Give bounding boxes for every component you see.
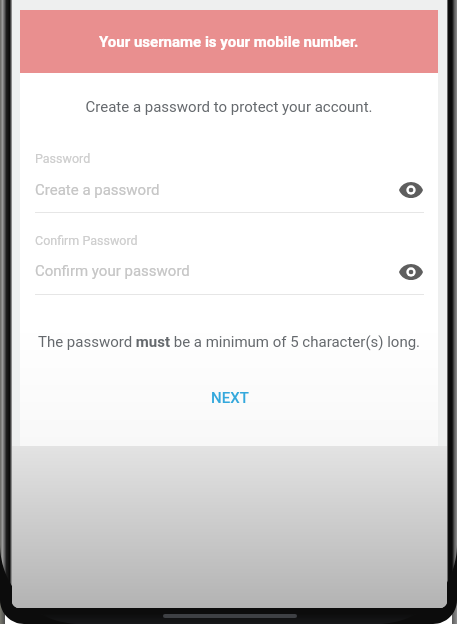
staticText: Password (35, 151, 91, 166)
button[interactable]: NEXT (197, 382, 263, 414)
staticText: Your username is your mobile number. (99, 33, 359, 51)
staticText: Confirm your password (35, 262, 190, 280)
staticText: Create a password to protect your accoun… (20, 98, 438, 116)
button[interactable]: Show password (395, 256, 427, 288)
staticText: The password must be a minimum of 5 char… (20, 333, 438, 351)
button[interactable]: Show password (395, 174, 427, 206)
staticText: Create a password (35, 181, 160, 199)
staticText: Confirm Password (35, 233, 138, 248)
staticText: NEXT (211, 389, 249, 407)
